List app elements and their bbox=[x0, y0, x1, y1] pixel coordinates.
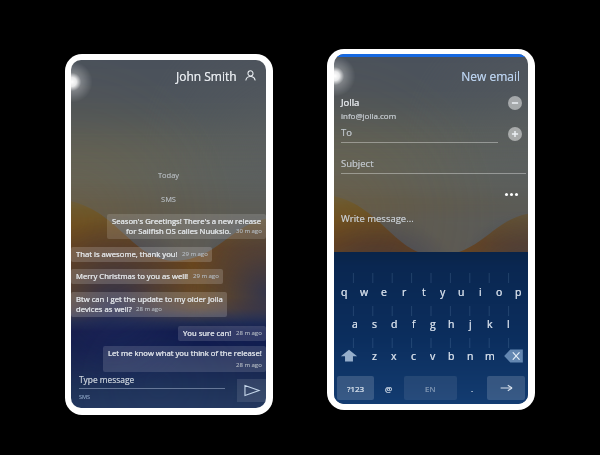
staticText: ?123 bbox=[347, 383, 365, 394]
button[interactable]: l bbox=[499, 314, 518, 333]
button[interactable]: h bbox=[442, 314, 461, 333]
button[interactable]: b bbox=[442, 346, 461, 365]
staticText: m bbox=[485, 349, 495, 363]
staticText: n bbox=[467, 349, 474, 363]
staticText: John Smith bbox=[176, 68, 237, 84]
staticText: o bbox=[496, 285, 503, 299]
button[interactable]: t bbox=[414, 282, 433, 301]
staticText: f bbox=[412, 317, 416, 331]
button[interactable]: Btw can I get the update to my older Jol… bbox=[71, 292, 227, 317]
button[interactable]: EN bbox=[404, 376, 457, 400]
staticText: SMS bbox=[71, 194, 266, 204]
staticText: Jolla bbox=[341, 96, 360, 109]
staticText: To bbox=[341, 126, 352, 139]
button[interactable]: o bbox=[490, 282, 509, 301]
staticText: t bbox=[422, 285, 426, 299]
staticText: Btw can I get the update to my older Jol… bbox=[76, 294, 223, 304]
button[interactable]: q bbox=[334, 282, 354, 301]
button[interactable]: @ bbox=[377, 376, 401, 400]
button[interactable]: d bbox=[385, 314, 404, 333]
staticText: a bbox=[352, 317, 358, 331]
button[interactable]: More options bbox=[502, 190, 521, 199]
staticText: Season's Greetings! There's a new releas… bbox=[112, 216, 262, 226]
staticText: . bbox=[471, 383, 474, 394]
button[interactable]: Shift bbox=[334, 346, 364, 365]
staticText: info@jolla.com bbox=[341, 110, 397, 121]
button[interactable]: Season's Greetings! There's a new releas… bbox=[107, 214, 266, 239]
staticText: for Sailfish OS calles Nuuksio. bbox=[126, 226, 232, 236]
button[interactable]: Backspace bbox=[499, 346, 528, 365]
staticText: w bbox=[360, 285, 369, 299]
staticText: x bbox=[391, 349, 397, 363]
button[interactable]: Send bbox=[237, 379, 266, 402]
button[interactable]: m bbox=[480, 346, 499, 365]
button[interactable]: e bbox=[374, 282, 394, 301]
button[interactable]: Enter bbox=[487, 376, 525, 400]
button[interactable]: p bbox=[509, 282, 528, 301]
button[interactable]: y bbox=[433, 282, 452, 301]
button[interactable]: j bbox=[461, 314, 480, 333]
staticText: e bbox=[381, 285, 387, 299]
staticText: Merry Christmas to you as well! bbox=[76, 271, 189, 281]
button[interactable]: i bbox=[471, 282, 490, 301]
staticText: You sure can! bbox=[183, 328, 232, 338]
staticText: z bbox=[372, 349, 377, 363]
staticText: j bbox=[469, 317, 472, 331]
button[interactable]: Type message bbox=[71, 372, 266, 408]
button[interactable]: Let me know what you think of the releas… bbox=[103, 346, 266, 372]
staticText: EN bbox=[425, 383, 436, 394]
staticText: i bbox=[479, 285, 482, 299]
staticText: SMS bbox=[79, 393, 91, 401]
button[interactable]: w bbox=[354, 282, 374, 301]
staticText: s bbox=[372, 317, 378, 331]
button[interactable]: . bbox=[460, 376, 484, 400]
button[interactable]: g bbox=[423, 314, 442, 333]
staticText: Type message bbox=[79, 374, 135, 385]
staticText: g bbox=[430, 317, 436, 331]
button[interactable]: Merry Christmas to you as well! bbox=[71, 269, 223, 284]
button[interactable]: Remove recipient bbox=[508, 96, 522, 110]
staticText: r bbox=[402, 285, 407, 299]
staticText: 28 m ago bbox=[136, 305, 162, 313]
button[interactable]: u bbox=[452, 282, 471, 301]
button[interactable]: Add recipient bbox=[508, 127, 522, 141]
button[interactable]: v bbox=[423, 346, 442, 365]
staticText: @ bbox=[385, 383, 393, 394]
staticText: 28 m ago bbox=[236, 329, 262, 337]
staticText: l bbox=[507, 317, 510, 331]
button[interactable]: ?123 bbox=[337, 376, 374, 400]
staticText: Write message... bbox=[341, 212, 414, 225]
button[interactable]: k bbox=[480, 314, 499, 333]
staticText: c bbox=[411, 349, 417, 363]
button[interactable]: x bbox=[384, 346, 404, 365]
button[interactable]: r bbox=[394, 282, 414, 301]
staticText: k bbox=[487, 317, 493, 331]
other: Contact bbox=[244, 70, 257, 83]
staticText: Let me know what you think of the releas… bbox=[108, 348, 262, 358]
staticText: d bbox=[391, 317, 398, 331]
staticText: Today bbox=[71, 170, 266, 180]
staticText: v bbox=[430, 349, 436, 363]
staticText: 28 m ago bbox=[236, 361, 262, 369]
button[interactable]: c bbox=[404, 346, 423, 365]
button[interactable]: John Smith bbox=[71, 66, 266, 86]
button[interactable]: New email bbox=[334, 68, 528, 84]
staticText: p bbox=[515, 285, 522, 299]
staticText: y bbox=[440, 285, 446, 299]
staticText: u bbox=[458, 285, 465, 299]
button[interactable]: n bbox=[461, 346, 480, 365]
staticText: h bbox=[448, 317, 455, 331]
button[interactable]: That is awesome, thank you! bbox=[71, 247, 212, 262]
button[interactable]: f bbox=[404, 314, 423, 333]
staticText: That is awesome, thank you! bbox=[76, 249, 178, 259]
button[interactable]: s bbox=[365, 314, 385, 333]
staticText: b bbox=[448, 349, 455, 363]
button[interactable]: z bbox=[364, 346, 384, 365]
button[interactable]: a bbox=[345, 314, 365, 333]
staticText: 30 m ago bbox=[236, 227, 262, 235]
staticText: 29 m ago bbox=[193, 272, 219, 280]
button[interactable]: You sure can! bbox=[178, 326, 266, 341]
staticText: q bbox=[341, 285, 348, 299]
staticText: devices as well? bbox=[76, 304, 132, 314]
staticText: Subject bbox=[341, 157, 374, 170]
